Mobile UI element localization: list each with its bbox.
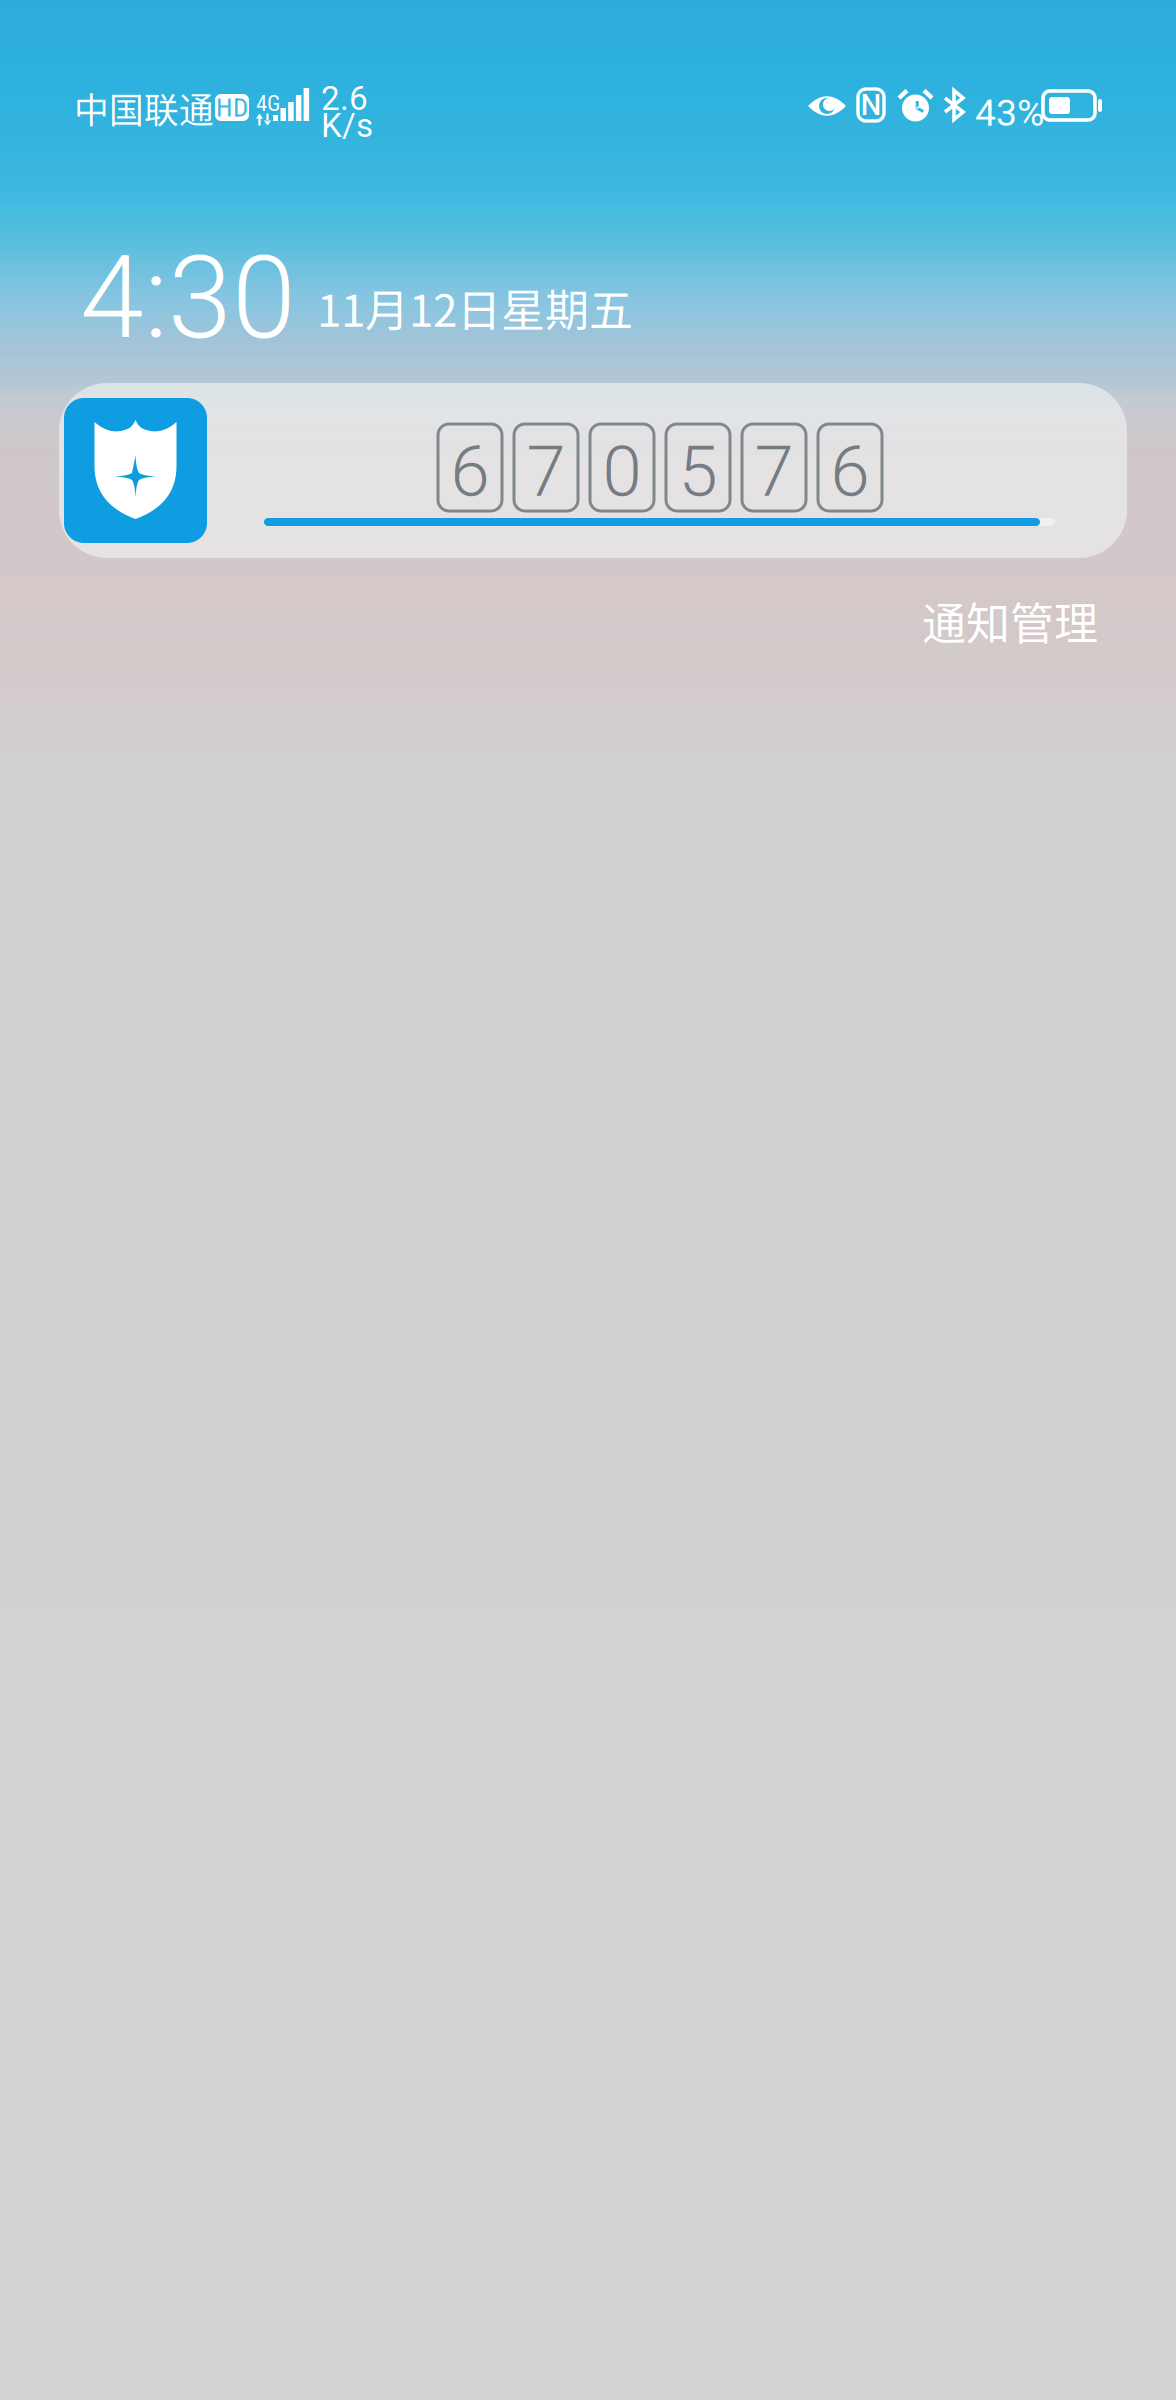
staticText: 43%: [975, 91, 1044, 135]
staticText: 0: [602, 430, 641, 513]
staticText: N: [860, 88, 881, 122]
staticText: 6: [450, 430, 489, 513]
staticText: 7: [754, 430, 793, 513]
staticText: 5: [678, 430, 717, 513]
staticText: 通知管理: [922, 589, 1098, 653]
staticText: 4G: [256, 90, 280, 117]
staticText: 11月12日星期五: [317, 276, 633, 339]
staticText: 6: [830, 430, 869, 513]
button[interactable]: 6: [59, 383, 1127, 558]
staticText: 4:30: [80, 231, 296, 365]
staticText: 7: [526, 430, 565, 513]
button[interactable]: 通知管理: [913, 582, 1107, 660]
staticText: HD: [216, 92, 248, 123]
staticText: 中国联通: [74, 83, 214, 133]
staticText: 2.6: [321, 79, 368, 118]
staticText: K/s: [321, 106, 373, 145]
